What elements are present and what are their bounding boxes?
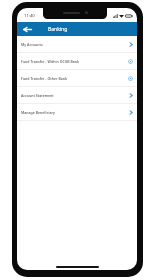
button[interactable]: Manage Beneficiary <box>17 104 137 121</box>
button[interactable]: Account Statement <box>17 87 137 104</box>
button[interactable]: Fund Transfer - Other Bank <box>17 70 137 87</box>
staticText: Fund Transfer - Within OCUB Bank <box>21 59 128 64</box>
staticText: Banking <box>48 26 68 33</box>
button[interactable]: My Accounts <box>17 36 137 53</box>
staticText: Fund Transfer - Other Bank <box>21 76 128 81</box>
button[interactable]: Fund Transfer - Within OCUB Bank <box>17 53 137 70</box>
staticText: My Accounts <box>21 42 129 47</box>
staticText: Account Statement <box>21 93 129 98</box>
staticText: 11:40 <box>24 13 35 19</box>
button[interactable]: Back <box>17 22 37 36</box>
staticText: Manage Beneficiary <box>21 110 129 115</box>
